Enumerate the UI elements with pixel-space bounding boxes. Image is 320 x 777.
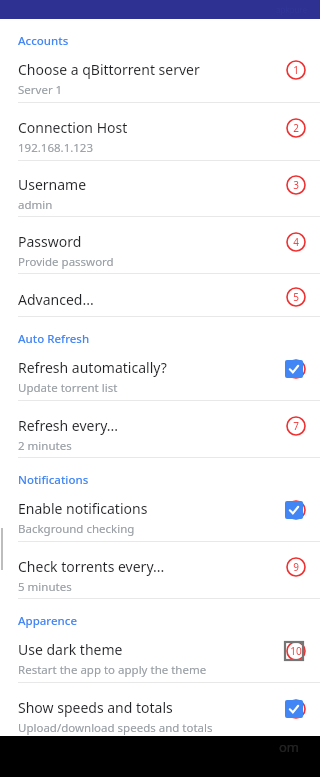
staticText: Notifications (18, 472, 89, 488)
staticText: 2 minutes (18, 438, 72, 454)
staticText: 8 (293, 503, 299, 517)
button[interactable] (0, 160, 320, 216)
button[interactable] (0, 630, 320, 682)
staticText: 6 (293, 362, 299, 376)
staticText: Update torrent list (18, 380, 118, 396)
staticText: 2 (293, 121, 299, 135)
staticText: Accounts (18, 33, 69, 49)
staticText: Restart the app to apply the theme (18, 662, 207, 678)
staticText: om (279, 738, 300, 756)
staticText: 192.168.1.123 (18, 140, 94, 156)
button[interactable]: Show speeds and totals (285, 700, 303, 718)
staticText: Apparence (18, 613, 78, 629)
staticText: Background checking (18, 521, 135, 537)
staticText: 1 (293, 63, 299, 77)
staticText: Server 1 (18, 82, 63, 98)
button[interactable]: Enable notifications (285, 501, 303, 519)
staticText: Connection Host (18, 118, 128, 137)
staticText: Refresh every... (18, 416, 119, 435)
button[interactable] (0, 216, 320, 273)
staticText: 5 (293, 290, 299, 304)
staticText: admin (18, 197, 53, 213)
staticText: Password (18, 232, 82, 251)
staticText: 5 minutes (18, 579, 72, 595)
staticText: Show speeds and totals (18, 698, 173, 717)
button[interactable] (0, 400, 320, 457)
button[interactable] (0, 103, 320, 160)
staticText: Username (18, 175, 87, 194)
button[interactable]: Use dark theme (285, 642, 303, 660)
staticText: 10 (290, 644, 302, 658)
staticText: Advanced... (18, 290, 94, 309)
staticText: 7 (293, 419, 299, 433)
staticText: Refresh automatically? (18, 358, 167, 377)
staticText: Enable notifications (18, 499, 148, 518)
staticText: Auto Refresh (18, 331, 90, 347)
staticText: 9 (293, 560, 299, 574)
staticText: 4 (293, 235, 299, 249)
button[interactable] (0, 273, 320, 316)
staticText: Use dark theme (18, 640, 123, 659)
staticText: Choose a qBittorrent server (18, 60, 200, 79)
staticText: Upload/download speeds and totals (18, 720, 213, 736)
button[interactable] (0, 348, 320, 400)
staticText: Check torrents every... (18, 557, 165, 576)
button[interactable]: Refresh automatically (285, 360, 303, 378)
button[interactable] (0, 682, 320, 736)
button[interactable] (0, 489, 320, 541)
staticText: 3 (293, 178, 299, 192)
staticText: Provide password (18, 254, 114, 270)
staticText: 11 (290, 702, 302, 716)
button[interactable] (0, 50, 320, 102)
button[interactable] (0, 541, 320, 598)
